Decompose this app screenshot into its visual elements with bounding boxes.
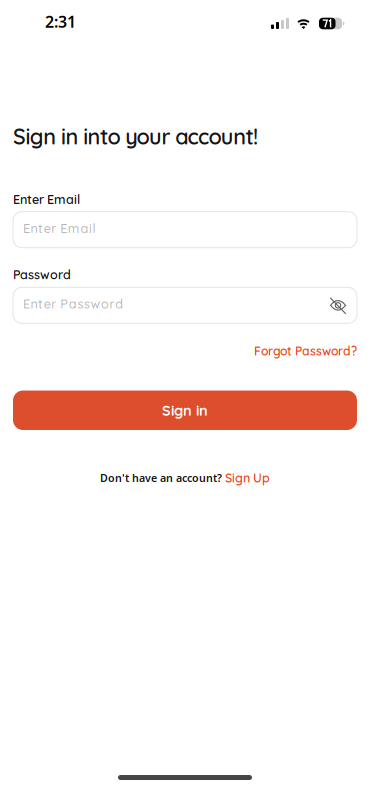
button[interactable]: Sign Up xyxy=(225,470,270,485)
staticText: Forgot Password? xyxy=(254,343,357,358)
button[interactable]: Forgot Password? xyxy=(254,343,357,358)
staticText: Password xyxy=(13,267,71,282)
staticText: Sign in xyxy=(162,401,208,419)
button[interactable]: Enter Password xyxy=(13,287,357,323)
button[interactable]: Enter Email xyxy=(13,212,357,248)
button[interactable]: Show password xyxy=(321,287,355,323)
staticText: 2:31 xyxy=(45,11,76,32)
staticText: Enter Email xyxy=(13,191,80,207)
staticText: Enter Password xyxy=(23,296,123,312)
staticText: Sign in into your account! xyxy=(13,123,258,150)
button[interactable]: Sign in xyxy=(13,390,357,430)
staticText: Sign Up xyxy=(225,470,270,485)
staticText: Don't have an account? xyxy=(100,471,222,485)
staticText: Enter Email xyxy=(23,220,95,236)
